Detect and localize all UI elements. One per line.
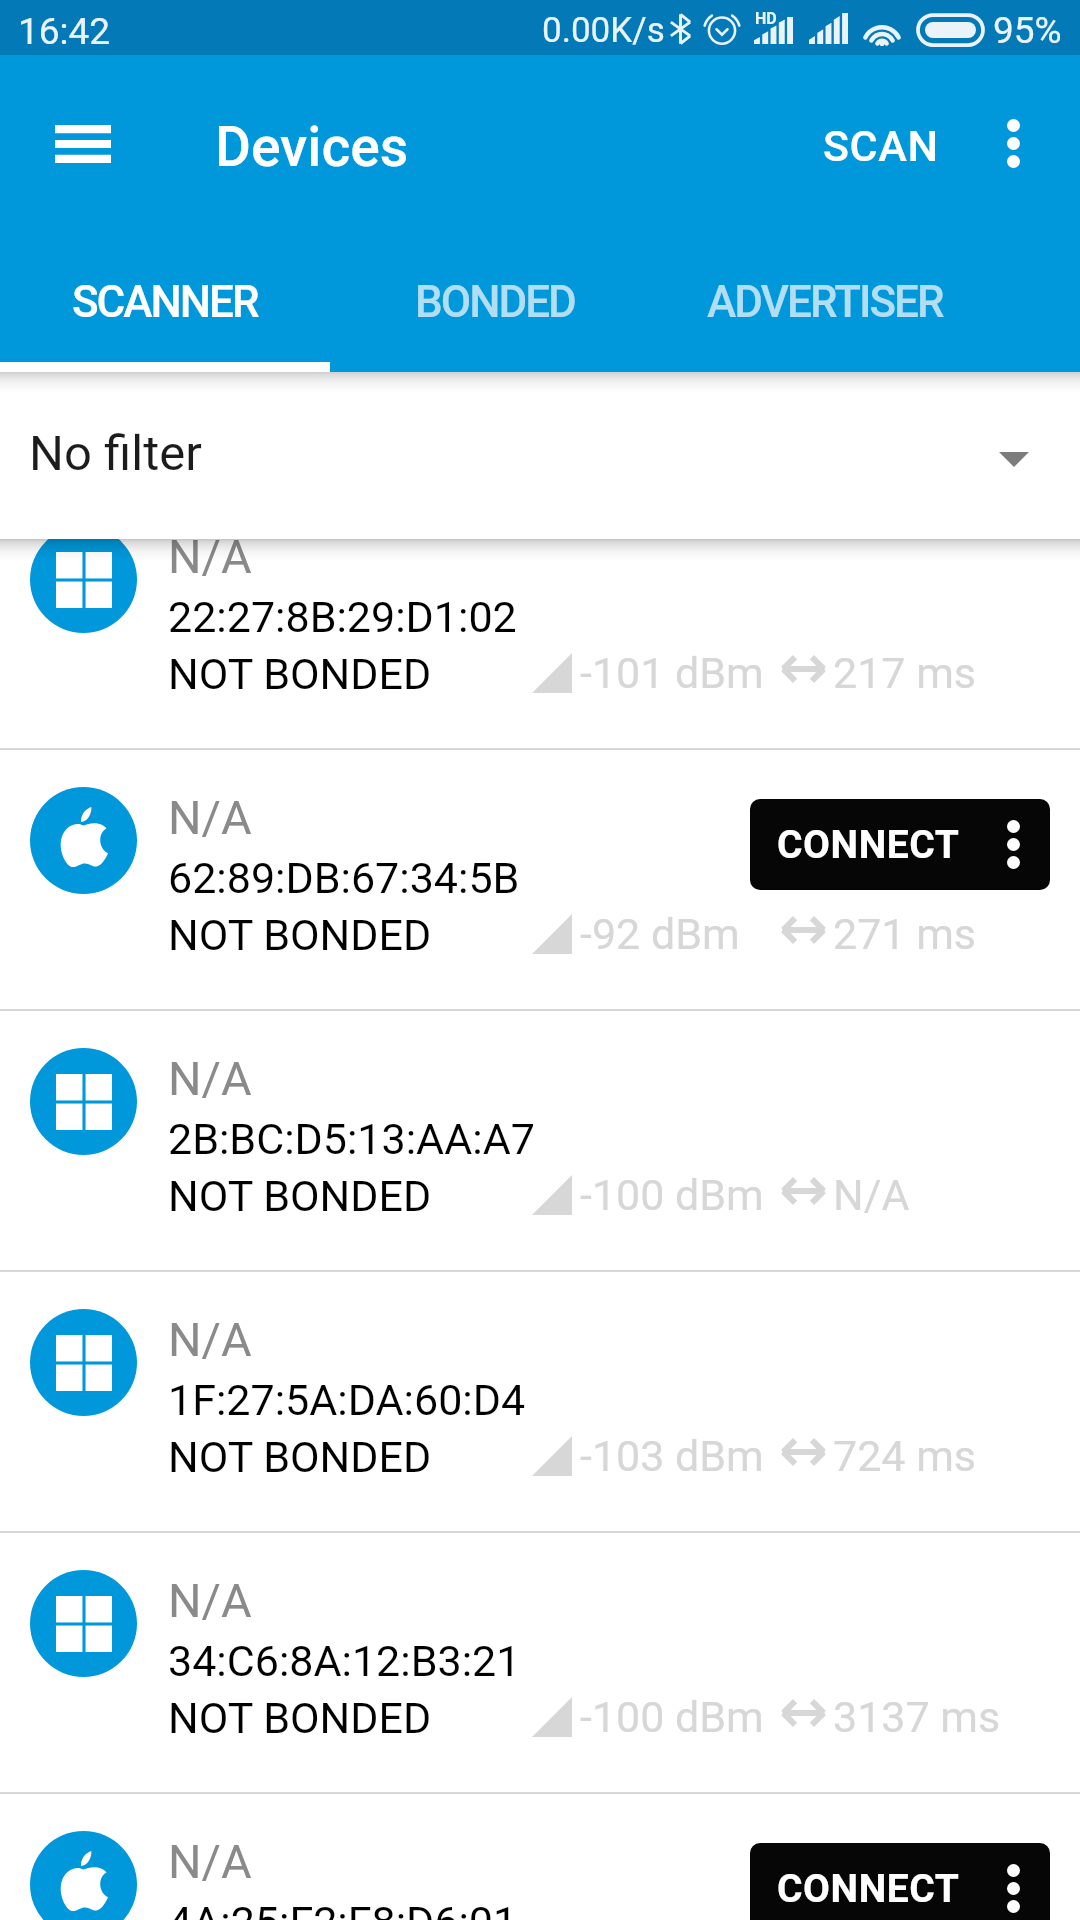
button[interactable]: BONDED	[330, 260, 660, 372]
staticText: NOT BONDED	[168, 1432, 432, 1482]
staticText: 95%	[993, 9, 1062, 52]
button[interactable]: CONNECT	[750, 1843, 1050, 1920]
staticText: NOT BONDED	[168, 1693, 432, 1743]
staticText: 4A:25:F2:F8:D6:01	[168, 1897, 518, 1920]
button[interactable]: Open navigation drawer	[23, 84, 143, 204]
button[interactable]: More options	[953, 83, 1073, 203]
button[interactable]: N/A	[0, 1794, 1080, 1920]
button[interactable]: Device options	[980, 1843, 1050, 1920]
staticText: N/A	[833, 1170, 910, 1220]
staticText: 34:C6:8A:12:B3:21	[168, 1636, 521, 1686]
staticText: 271 ms	[833, 909, 977, 959]
staticText: HD	[755, 9, 777, 28]
staticText: NOT BONDED	[168, 910, 432, 960]
staticText: -100 dBm	[580, 1170, 764, 1220]
button[interactable]: N/A	[0, 1533, 1080, 1794]
staticText: SCANNER	[72, 276, 258, 328]
button[interactable]: N/A	[0, 750, 1080, 1011]
staticText: NOT BONDED	[168, 1171, 432, 1221]
staticText: N/A	[168, 539, 252, 584]
button[interactable]: N/A	[0, 1272, 1080, 1533]
staticText: -100 dBm	[580, 1692, 764, 1742]
button[interactable]: SCANNER	[0, 260, 330, 372]
staticText: N/A	[168, 1834, 252, 1889]
staticText: SCAN	[823, 121, 939, 171]
staticText: CONNECT	[777, 822, 960, 868]
staticText: 0.00K/s	[542, 10, 665, 51]
button[interactable]: ADVERTISER	[660, 260, 990, 372]
staticText: CONNECT	[777, 1866, 960, 1912]
staticText: ADVERTISER	[707, 276, 943, 328]
staticText: Devices	[215, 115, 409, 179]
staticText: 3137 ms	[833, 1692, 1001, 1742]
staticText: N/A	[168, 1312, 252, 1367]
staticText: No filter	[29, 425, 202, 482]
staticText: BONDED	[415, 276, 575, 328]
button[interactable]: CONNECT	[750, 799, 1050, 890]
staticText: 217 ms	[833, 648, 977, 698]
button[interactable]: N/A	[0, 539, 1080, 750]
staticText: N/A	[168, 790, 252, 845]
staticText: NOT BONDED	[168, 649, 432, 699]
staticText: 2B:BC:D5:13:AA:A7	[168, 1114, 535, 1164]
staticText: 16:42	[18, 10, 111, 53]
staticText: N/A	[168, 1573, 252, 1628]
staticText: N/A	[168, 1051, 252, 1106]
staticText: 724 ms	[833, 1431, 977, 1481]
staticText: 22:27:8B:29:D1:02	[168, 592, 517, 642]
staticText: 1F:27:5A:DA:60:D4	[168, 1375, 526, 1425]
button[interactable]: Device options	[980, 799, 1050, 890]
staticText: 62:89:DB:67:34:5B	[168, 853, 520, 903]
staticText: -103 dBm	[580, 1431, 764, 1481]
staticText: -92 dBm	[580, 909, 740, 959]
button[interactable]: SCAN	[789, 86, 973, 206]
button[interactable]: No filter	[0, 372, 1080, 539]
button[interactable]: N/A	[0, 1011, 1080, 1272]
staticText: -101 dBm	[580, 648, 764, 698]
